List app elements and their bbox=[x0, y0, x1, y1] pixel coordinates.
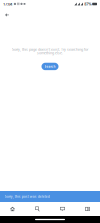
button[interactable]: Search bbox=[25, 202, 50, 216]
button[interactable]: Search bbox=[41, 63, 58, 70]
staticText: 87% bbox=[84, 1, 91, 6]
staticText: Sorry, this page doesn't exist. Try sear… bbox=[12, 47, 88, 52]
button[interactable]: Messages bbox=[50, 202, 75, 216]
button[interactable]: Home bbox=[0, 202, 25, 216]
staticText: something else. bbox=[37, 50, 63, 55]
button[interactable]: Feed bbox=[75, 202, 100, 216]
staticText: Search bbox=[44, 64, 55, 68]
staticText: Sorry, this post was deleted bbox=[5, 194, 50, 199]
button[interactable]: Back bbox=[0, 9, 14, 21]
staticText: 17:04 bbox=[3, 1, 12, 7]
